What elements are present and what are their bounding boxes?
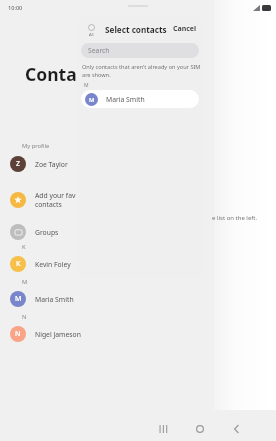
staticText: M xyxy=(15,294,22,304)
button[interactable]: Search xyxy=(81,43,199,58)
staticText: K xyxy=(22,243,26,251)
staticText: contacts xyxy=(35,200,62,209)
staticText: N xyxy=(15,329,21,339)
staticText: are shown. xyxy=(82,71,111,79)
staticText: M xyxy=(22,278,28,286)
staticText: My profile xyxy=(22,142,50,150)
staticText: Select contacts xyxy=(105,24,167,35)
button[interactable]: M xyxy=(10,287,102,311)
staticText: M xyxy=(89,96,95,104)
button[interactable]: Select all xyxy=(82,21,100,41)
staticText: All xyxy=(89,32,94,37)
staticText: K xyxy=(16,259,21,269)
button[interactable]: Cancel xyxy=(170,22,200,36)
staticText: Zoe Taylor xyxy=(35,160,68,169)
button[interactable]: N xyxy=(10,322,102,346)
staticText: Z xyxy=(16,159,21,169)
button[interactable]: Back xyxy=(226,421,248,437)
staticText: Maria Smith xyxy=(106,95,145,104)
button[interactable]: Home xyxy=(189,421,211,437)
button[interactable]: Groups xyxy=(10,220,102,244)
staticText: 10:00 xyxy=(8,4,23,12)
button[interactable]: K xyxy=(10,252,102,276)
button[interactable]: Add your favourite xyxy=(10,186,102,214)
staticText: e list on the left. xyxy=(212,214,258,222)
staticText: Add your favourite xyxy=(35,191,95,200)
staticText: Kevin Foley xyxy=(35,260,71,269)
staticText: Only contacts that aren't already on you… xyxy=(82,63,201,71)
staticText: Contacts xyxy=(25,62,103,86)
button[interactable]: Recents xyxy=(152,421,174,437)
staticText: Maria Smith xyxy=(35,295,74,304)
button[interactable]: Z xyxy=(10,152,102,176)
staticText: Cancel xyxy=(173,24,197,34)
staticText: M xyxy=(84,82,89,89)
staticText: Groups xyxy=(35,228,59,237)
staticText: Search xyxy=(88,46,110,55)
button[interactable]: M xyxy=(81,90,199,108)
staticText: N xyxy=(22,313,27,321)
staticText: Nigel Jameson xyxy=(35,330,81,339)
